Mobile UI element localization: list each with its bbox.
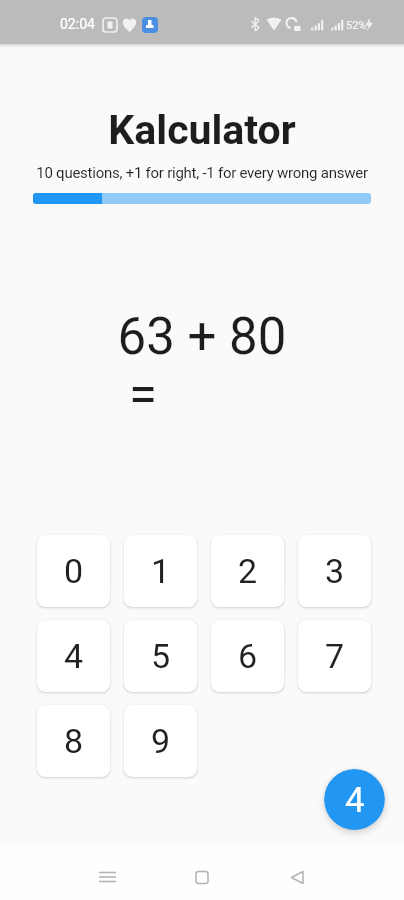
staticText: 2 [238, 551, 258, 591]
staticText: 8 [64, 721, 84, 761]
staticText: 7 [325, 636, 345, 676]
staticText: 6 [238, 636, 258, 676]
staticText: 5 [151, 636, 171, 676]
staticText: 1 [151, 551, 171, 591]
staticText: 52% [346, 19, 367, 32]
staticText: 0 [64, 551, 84, 591]
staticText: 4 [345, 780, 365, 821]
button[interactable]: 4 [324, 769, 385, 830]
staticText: 9 [151, 721, 171, 761]
staticText: 10 questions, +1 for right, -1 for every… [0, 164, 404, 182]
staticText: = [129, 365, 157, 425]
button[interactable]: 3 [298, 535, 371, 607]
button[interactable]: 8 [37, 705, 110, 777]
staticText: 63 + 80 [0, 307, 404, 367]
button[interactable]: 0 [37, 535, 110, 607]
button[interactable]: 4 [37, 620, 110, 692]
button[interactable] [269, 844, 404, 900]
button[interactable]: 1 [124, 535, 197, 607]
button[interactable]: 2 [211, 535, 284, 607]
button[interactable]: 5 [124, 620, 197, 692]
button[interactable] [0, 844, 134, 900]
button[interactable]: 7 [298, 620, 371, 692]
staticText: 4 [64, 636, 84, 676]
staticText: 3 [325, 551, 345, 591]
button[interactable] [134, 844, 269, 900]
button[interactable]: 9 [124, 705, 197, 777]
button[interactable]: 6 [211, 620, 284, 692]
staticText: Kalculator [0, 106, 404, 154]
staticText: 02:04 [60, 16, 95, 32]
